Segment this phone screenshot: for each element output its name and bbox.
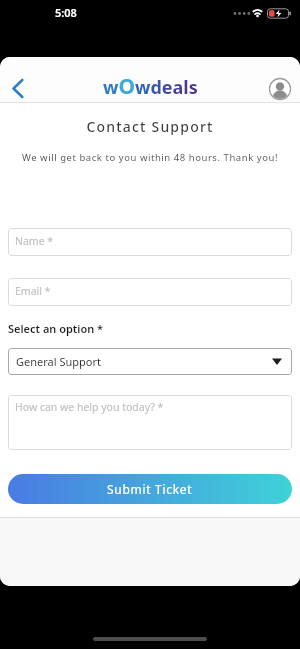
staticText: Select an option * — [8, 321, 104, 336]
staticText: wOwdeals — [103, 72, 198, 101]
staticText: We will get back to you within 48 hours.… — [0, 151, 300, 164]
staticText: How can we help you today? * — [15, 400, 164, 414]
button[interactable]: Name * — [8, 228, 292, 256]
button[interactable]: Submit Ticket — [8, 474, 292, 504]
button[interactable]: How can we help you today? * — [8, 395, 292, 450]
staticText: Email * — [15, 284, 51, 298]
button[interactable]: General Support — [8, 348, 292, 375]
button[interactable] — [0, 57, 36, 102]
button[interactable]: Email * — [8, 278, 292, 306]
staticText: Name * — [15, 234, 54, 248]
staticText: 5:08 — [55, 5, 77, 20]
staticText: General Support — [16, 354, 101, 369]
button[interactable] — [269, 78, 291, 100]
staticText: Contact Support — [0, 117, 300, 136]
staticText: Submit Ticket — [107, 481, 193, 497]
